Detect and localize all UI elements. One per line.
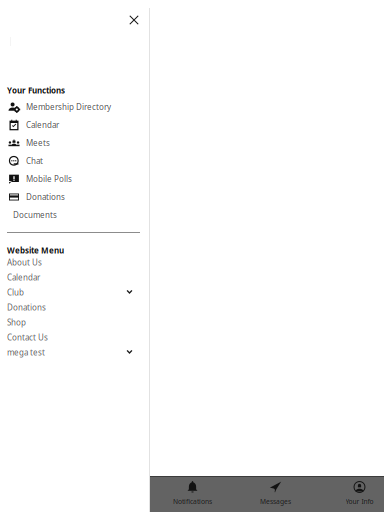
staticText: Contact Us — [7, 332, 48, 343]
button[interactable]: Notifications — [150, 477, 235, 512]
button[interactable]: Donations — [0, 188, 149, 206]
staticText: Calendar — [26, 120, 59, 130]
button[interactable]: mega test — [0, 345, 149, 360]
button[interactable]: Calendar — [0, 116, 149, 134]
staticText: Website Menu — [7, 245, 64, 256]
staticText: Donations — [26, 192, 65, 202]
staticText: Notifications — [173, 497, 212, 506]
button[interactable]: Close menu — [123, 9, 145, 31]
button[interactable]: Calendar — [0, 270, 149, 285]
button[interactable]: Meets — [0, 134, 149, 152]
button[interactable]: Chat — [0, 152, 149, 170]
staticText: Chat — [26, 156, 43, 166]
button[interactable]: Membership Directory — [0, 98, 149, 116]
staticText: mega test — [7, 347, 45, 358]
button[interactable]: Donations — [0, 300, 149, 315]
staticText: Membership Directory — [26, 102, 111, 112]
button[interactable]: Mobile Polls — [0, 170, 149, 188]
button[interactable]: Your Info — [317, 477, 384, 512]
staticText: Mobile Polls — [26, 174, 72, 184]
staticText: Meets — [26, 138, 50, 148]
staticText: About Us — [7, 257, 42, 268]
staticText: Your Functions — [7, 85, 65, 96]
button[interactable]: Club — [0, 285, 149, 300]
button[interactable]: Documents — [0, 206, 149, 224]
button[interactable]: About Us — [0, 255, 149, 270]
button[interactable]: Messages — [233, 477, 318, 512]
staticText: Club — [7, 287, 24, 298]
staticText: Messages — [260, 497, 291, 506]
staticText: Donations — [7, 302, 46, 313]
staticText: Documents — [13, 210, 57, 220]
staticText: Your Info — [345, 497, 373, 506]
staticText: Calendar — [7, 272, 40, 283]
button[interactable]: Contact Us — [0, 330, 149, 345]
staticText: Shop — [7, 317, 26, 328]
button[interactable]: Shop — [0, 315, 149, 330]
